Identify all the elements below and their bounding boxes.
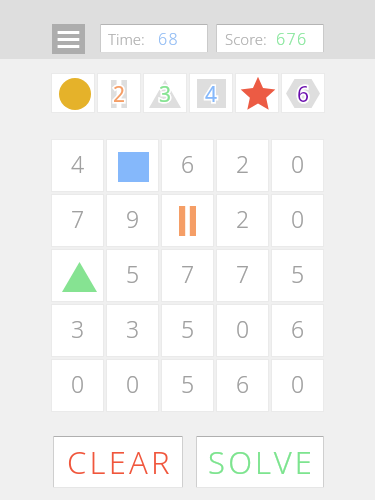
staticText: 0 [126,368,140,399]
button[interactable]: Cell 0 [271,359,324,412]
button[interactable]: Cell 6 [216,359,269,412]
button[interactable]: Cell 0 [271,194,324,247]
staticText: SOLVE [208,441,316,483]
button[interactable]: Menu [52,24,85,54]
button[interactable]: Star [235,73,279,113]
staticText: Score: [225,29,267,49]
button[interactable]: Hexagon 6 [281,73,325,113]
staticText: 2 [236,148,250,179]
button[interactable]: Cell 2 [216,194,269,247]
staticText: CLEAR [67,441,173,483]
staticText: 7 [181,258,195,289]
button[interactable]: Square 4 [189,73,233,113]
staticText: 676 [276,28,308,50]
button[interactable]: Cell 7 [216,249,269,302]
staticText: 0 [291,368,305,399]
staticText: Time: [108,29,145,49]
button[interactable]: Cell I [161,194,214,247]
button[interactable]: Cell 3 [106,304,159,357]
button[interactable]: Score: [225,24,324,53]
staticText: 68 [158,28,180,50]
button[interactable]: Cell 2 [216,139,269,192]
staticText: 2 [113,80,126,109]
button[interactable]: SOLVE [196,436,324,488]
staticText: 0 [291,203,305,234]
button[interactable]: Cell 6 [271,304,324,357]
staticText: 4 [205,80,218,109]
button[interactable]: Cell 7 [51,194,104,247]
button[interactable]: Cell T [51,249,104,302]
button[interactable]: Cell 5 [106,249,159,302]
staticText: 9 [126,203,140,234]
button[interactable]: Circle [51,73,95,113]
staticText: 3 [159,80,172,109]
button[interactable]: Cell 5 [161,304,214,357]
button[interactable]: Cell 9 [106,194,159,247]
button[interactable]: Cell 6 [161,139,214,192]
button[interactable]: CLEAR [53,436,183,488]
staticText: 3 [159,80,172,109]
button[interactable]: Cell 7 [161,249,214,302]
button[interactable]: Cell B [106,139,159,192]
button[interactable]: Cell 5 [271,249,324,302]
staticText: 0 [291,148,305,179]
staticText: 2 [236,203,250,234]
staticText: 3 [71,313,85,344]
staticText: 7 [71,203,85,234]
staticText: 5 [126,258,140,289]
staticText: 6 [297,80,310,109]
staticText: 0 [236,313,250,344]
staticText: 4 [205,80,218,109]
button[interactable]: Cell 3 [51,304,104,357]
staticText: 0 [71,368,85,399]
staticText: 6 [236,368,250,399]
staticText: 6 [291,313,305,344]
button[interactable]: Cell 0 [106,359,159,412]
button[interactable]: Cell 0 [51,359,104,412]
staticText: 5 [181,313,195,344]
staticText: 7 [236,258,250,289]
button[interactable]: Cell 0 [216,304,269,357]
button[interactable]: Cell 5 [161,359,214,412]
staticText: 3 [126,313,140,344]
button[interactable]: Cell 0 [271,139,324,192]
staticText: 4 [71,148,85,179]
staticText: 2 [113,80,126,109]
staticText: 5 [181,368,195,399]
button[interactable]: Time: [108,24,208,53]
button[interactable]: Bars 2 [97,73,141,113]
staticText: 5 [291,258,305,289]
button[interactable]: Triangle 3 [143,73,187,113]
staticText: 6 [297,80,310,109]
button[interactable]: Cell 4 [51,139,104,192]
staticText: 6 [181,148,195,179]
